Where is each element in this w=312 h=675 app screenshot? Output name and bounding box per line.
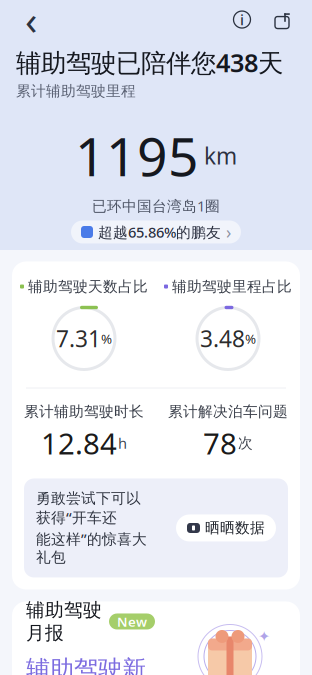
staticText: % (101, 330, 112, 347)
staticText: 辅助驾驶已陪伴您438天 (16, 45, 283, 79)
button[interactable]: 辅助驾驶月报 (12, 601, 300, 675)
staticText: 次 (238, 434, 253, 452)
staticText: 辅助驾驶月报 (26, 599, 102, 644)
staticText: h (118, 433, 127, 453)
staticText: ‹ (25, 0, 37, 46)
staticText: 已环中国台湾岛1圈 (92, 196, 220, 215)
staticText: 累计辅助驾驶里程 (16, 82, 136, 100)
staticText: 辅助驾驶新 (26, 654, 146, 675)
staticText: % (245, 330, 256, 347)
staticText: 1195 (75, 120, 199, 191)
staticText: 累计解决泊车问题 (168, 402, 288, 420)
staticText: 3.48 (200, 323, 245, 354)
button[interactable]: 超越65.86%的鹏友 (71, 220, 241, 243)
staticText: i (240, 10, 244, 29)
button[interactable]: Back (14, 2, 48, 36)
staticText: 超越65.86%的鹏友 (98, 222, 221, 242)
staticText: 晒晒数据 (205, 519, 265, 537)
staticText: 能这样”的惊喜大礼包 (36, 529, 147, 566)
staticText: 辅助驾驶天数占比 (28, 277, 148, 295)
button[interactable]: Information (226, 3, 258, 35)
staticText: 辅助驾驶里程占比 (172, 277, 292, 295)
staticText: 勇敢尝试下可以获得“开车还 (36, 489, 141, 527)
staticText: 12.84 (41, 423, 117, 462)
staticText: km (204, 141, 237, 171)
staticText: 7.31 (56, 323, 101, 354)
staticText: New (117, 613, 147, 630)
staticText: 78 (203, 423, 237, 462)
button[interactable]: Share (266, 3, 298, 35)
staticText: ✦ (258, 628, 270, 645)
button[interactable]: 晒晒数据 (176, 514, 276, 541)
staticText: 累计辅助驾驶时长 (24, 402, 144, 420)
staticText: › (226, 220, 231, 243)
